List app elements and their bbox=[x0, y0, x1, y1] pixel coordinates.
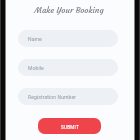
staticText: Make Your Booking bbox=[0, 5, 139, 140]
staticText: Registration Number bbox=[28, 94, 77, 100]
button[interactable]: SUBMIT bbox=[38, 118, 101, 134]
button[interactable]: Registration Number bbox=[18, 88, 118, 105]
staticText: Name bbox=[28, 36, 42, 42]
staticText: SUBMIT bbox=[61, 125, 79, 130]
button[interactable]: Name bbox=[18, 30, 118, 47]
staticText: Mobile bbox=[28, 65, 44, 71]
button[interactable]: Mobile bbox=[18, 59, 118, 76]
